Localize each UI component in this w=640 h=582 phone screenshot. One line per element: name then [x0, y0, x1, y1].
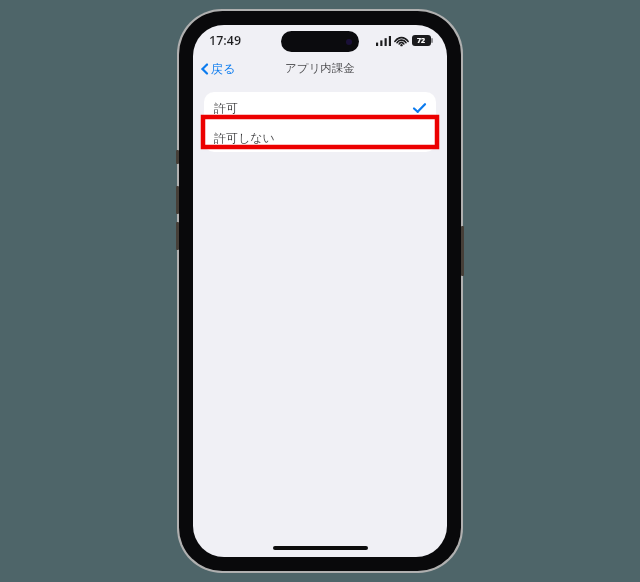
staticText: 72	[417, 36, 426, 46]
button[interactable]: 許可しない	[204, 123, 436, 152]
staticText: アプリ内課金	[285, 61, 355, 75]
staticText: 17:49	[209, 32, 242, 49]
button[interactable]: 戻る	[193, 57, 244, 80]
other: Home	[273, 546, 368, 550]
button[interactable]: 許可	[204, 92, 436, 123]
staticText: 許可	[214, 100, 238, 115]
staticText: 許可しない	[214, 130, 275, 145]
staticText: 戻る	[211, 61, 236, 76]
